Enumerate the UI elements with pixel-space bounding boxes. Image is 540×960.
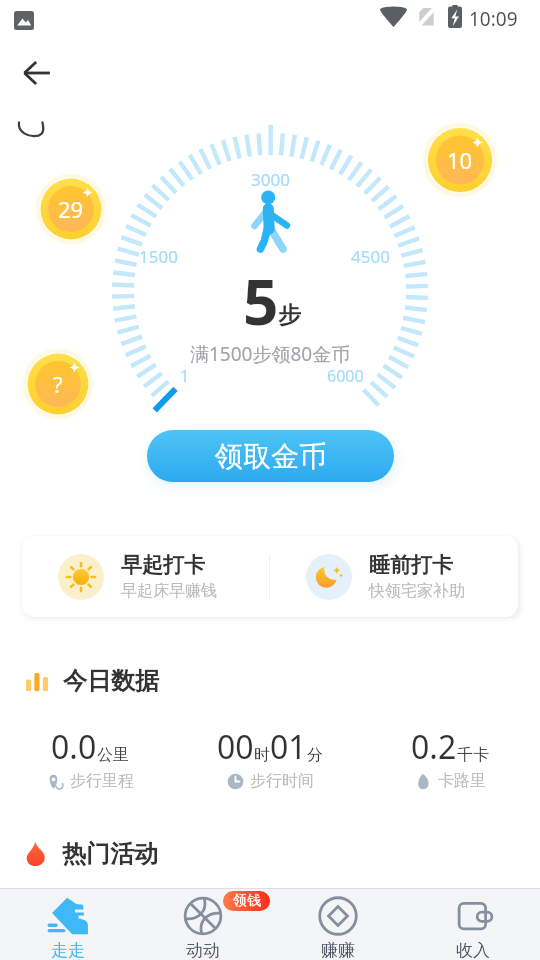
staticText: 热门活动 bbox=[62, 839, 158, 869]
staticText: 6000 bbox=[327, 365, 364, 387]
staticText: 步行里程 bbox=[70, 771, 134, 791]
button[interactable]: 早起打卡 bbox=[22, 536, 269, 617]
staticText: 快领宅家补助 bbox=[369, 581, 465, 601]
button[interactable]: 走走 bbox=[0, 889, 135, 960]
staticText: ? bbox=[53, 369, 63, 399]
staticText: 早起打卡 bbox=[121, 552, 205, 578]
staticText: 卡路里 bbox=[438, 771, 486, 791]
button[interactable]: Coin 29 bbox=[35, 173, 107, 245]
staticText: 5 bbox=[243, 259, 279, 343]
staticText: 0.2 bbox=[411, 725, 457, 769]
staticText: 01 bbox=[270, 725, 307, 769]
staticText: 千卡 bbox=[457, 745, 489, 765]
button[interactable]: 动动 bbox=[135, 889, 270, 960]
staticText: 公里 bbox=[97, 745, 129, 765]
staticText: 10 bbox=[447, 145, 473, 175]
staticText: 走走 bbox=[51, 940, 85, 960]
staticText: 1500 bbox=[139, 245, 178, 268]
staticText: 赚赚 bbox=[321, 940, 355, 960]
staticText: 领钱 bbox=[233, 892, 261, 910]
staticText: 29 bbox=[58, 194, 84, 224]
staticText: 收入 bbox=[456, 940, 490, 960]
staticText: 3000 bbox=[251, 168, 290, 191]
staticText: 动动 bbox=[186, 940, 220, 960]
staticText: 10:09 bbox=[469, 6, 518, 32]
staticText: 分 bbox=[307, 745, 323, 765]
staticText: 步 bbox=[278, 301, 301, 330]
staticText: 领取金币 bbox=[215, 439, 327, 474]
staticText: 今日数据 bbox=[63, 666, 159, 696]
staticText: 0.0 bbox=[51, 725, 97, 769]
staticText: 睡前打卡 bbox=[369, 552, 453, 578]
button[interactable]: Coin ? bbox=[22, 348, 94, 420]
button[interactable]: 收入 bbox=[405, 889, 540, 960]
button[interactable]: 领取金币 bbox=[147, 430, 394, 482]
staticText: 满1500步领80金币 bbox=[190, 341, 351, 367]
button[interactable]: 赚赚 bbox=[270, 889, 405, 960]
staticText: 时 bbox=[254, 745, 270, 765]
staticText: 00 bbox=[217, 725, 254, 769]
staticText: 步行时间 bbox=[250, 771, 314, 791]
button[interactable]: 睡前打卡 bbox=[270, 536, 518, 617]
button[interactable]: Back bbox=[14, 50, 60, 96]
staticText: 4500 bbox=[351, 245, 390, 268]
staticText: 1 bbox=[180, 365, 190, 387]
button[interactable]: Coin 10 bbox=[422, 122, 498, 198]
staticText: 早起床早赚钱 bbox=[121, 581, 217, 601]
